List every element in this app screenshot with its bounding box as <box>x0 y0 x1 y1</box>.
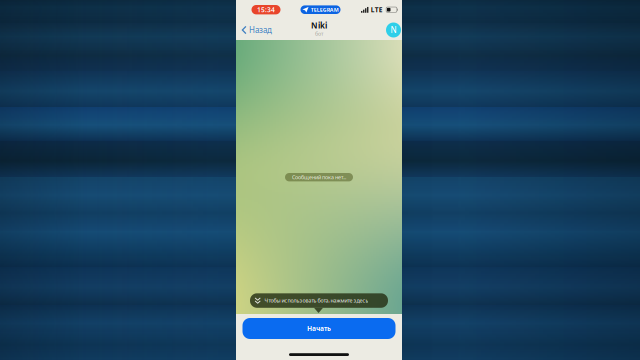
staticText: LTE <box>371 5 383 14</box>
button[interactable]: Назад <box>236 21 276 39</box>
staticText: Niki <box>311 20 327 31</box>
staticText: Начать <box>307 324 331 333</box>
button[interactable]: Чтобы использовать бота, нажмите здесь <box>250 293 388 308</box>
button[interactable]: Chat info <box>382 20 402 40</box>
staticText: 15:34 <box>257 5 275 14</box>
staticText: TELEGRAM <box>311 6 339 13</box>
staticText: Сообщений пока нет... <box>292 174 346 181</box>
staticText: бот <box>315 30 323 37</box>
staticText: Назад <box>249 25 272 35</box>
button[interactable]: Начать <box>242 318 395 339</box>
staticText: Чтобы использовать бота, нажмите здесь <box>264 297 368 304</box>
staticText: N <box>390 25 396 35</box>
